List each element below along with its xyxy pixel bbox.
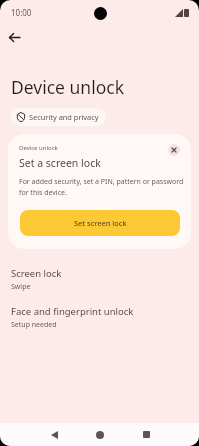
staticText: For added security, set a PIN, pattern o… xyxy=(19,177,185,197)
button[interactable]: Screen lock xyxy=(0,259,199,300)
staticText: Face and fingerprint unlock xyxy=(11,305,134,318)
button[interactable]: Security and privacy xyxy=(11,108,106,126)
button[interactable]: Home xyxy=(87,423,113,446)
button[interactable]: Back xyxy=(1,24,28,51)
staticText: Device unlock xyxy=(19,144,58,152)
button[interactable]: Face and fingerprint unlock xyxy=(0,297,199,338)
staticText: Swipe xyxy=(11,282,31,292)
button[interactable]: Dismiss xyxy=(168,144,180,156)
staticText: Set screen lock xyxy=(74,218,127,228)
staticText: Device unlock xyxy=(11,75,124,99)
button[interactable]: Set screen lock xyxy=(20,210,180,236)
staticText: 10:00 xyxy=(11,7,32,18)
staticText: Screen lock xyxy=(11,267,62,280)
button[interactable]: Recents xyxy=(133,423,159,446)
staticText: Setup needed xyxy=(11,320,57,330)
staticText: Set a screen lock xyxy=(19,156,101,170)
staticText: Security and privacy xyxy=(29,112,99,122)
button[interactable]: Back xyxy=(41,423,67,446)
